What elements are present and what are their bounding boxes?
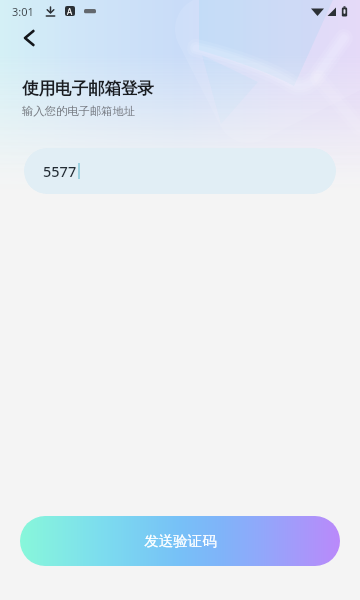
staticText: 使用电子邮箱登录 bbox=[22, 78, 154, 99]
staticText: 3:01 bbox=[12, 4, 34, 19]
button[interactable]: Back bbox=[11, 20, 47, 56]
staticText: A bbox=[67, 6, 73, 16]
button[interactable]: 5577 bbox=[24, 148, 336, 194]
staticText: 发送验证码 bbox=[144, 532, 217, 550]
staticText: 输入您的电子邮箱地址 bbox=[22, 104, 135, 118]
button[interactable]: 发送验证码 bbox=[20, 516, 340, 566]
staticText: 5577 bbox=[43, 161, 77, 181]
